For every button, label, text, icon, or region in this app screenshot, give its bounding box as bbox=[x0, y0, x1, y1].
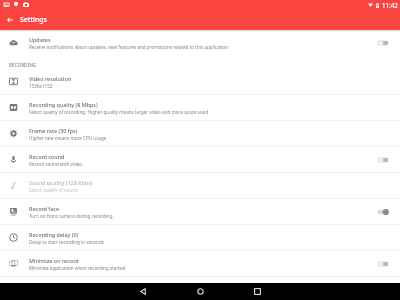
staticText: Record face bbox=[29, 205, 60, 212]
button[interactable]: Back bbox=[0, 10, 20, 30]
button[interactable]: Frame rate (30 fps) bbox=[0, 121, 400, 147]
staticText: 1536x1152 bbox=[29, 83, 53, 89]
staticText: Video resolution bbox=[29, 75, 72, 82]
staticText: Receive notifications about updates, new… bbox=[29, 44, 229, 50]
button[interactable]: Video resolution bbox=[0, 69, 400, 95]
staticText: Minimize on record bbox=[29, 257, 79, 264]
staticText: Delay to start recording in seconds bbox=[29, 239, 104, 245]
button[interactable]: Home bbox=[188, 283, 212, 300]
button[interactable]: Updates bbox=[0, 30, 400, 56]
button[interactable]: Recording quality (8 Mbps) bbox=[0, 95, 400, 121]
button[interactable]: Toggle bbox=[377, 153, 389, 167]
button[interactable]: Toggle bbox=[377, 257, 389, 271]
button[interactable]: Back bbox=[131, 283, 155, 300]
staticText: Frame rate (30 fps) bbox=[29, 127, 78, 134]
button[interactable]: Toggle bbox=[377, 36, 389, 50]
staticText: Updates bbox=[29, 36, 51, 43]
staticText: Settings bbox=[20, 15, 47, 24]
staticText: Sound quality (128 Kbps) bbox=[29, 179, 93, 186]
staticText: Select quality of sound bbox=[29, 187, 78, 193]
staticText: RECORDING bbox=[9, 62, 37, 68]
staticText: Higher rate means more CPU usage bbox=[29, 135, 107, 141]
staticText: Select quality of recording. Higher qual… bbox=[29, 109, 209, 115]
staticText: Minimize application when recording star… bbox=[29, 265, 126, 271]
staticText: Recording delay (0) bbox=[29, 231, 79, 238]
button[interactable]: Recent apps bbox=[245, 283, 269, 300]
button[interactable]: Record sound bbox=[0, 147, 400, 173]
staticText: Turn on front camera during recording bbox=[29, 213, 113, 219]
button[interactable]: Minimize on record bbox=[0, 251, 400, 277]
button[interactable]: Toggle bbox=[377, 205, 389, 219]
staticText: Record sound bbox=[29, 153, 65, 160]
staticText: Record sound with video bbox=[29, 161, 83, 167]
staticText: 11:42 bbox=[382, 1, 398, 9]
button[interactable]: Record face bbox=[0, 199, 400, 225]
button[interactable]: Recording delay (0) bbox=[0, 225, 400, 251]
staticText: Recording quality (8 Mbps) bbox=[29, 101, 98, 108]
button[interactable]: Sound quality (128 Kbps) bbox=[0, 173, 400, 199]
